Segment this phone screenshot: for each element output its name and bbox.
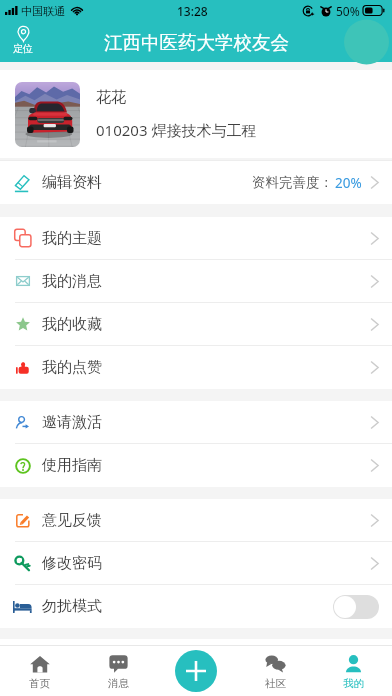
button[interactable]: 使用指南: [0, 444, 392, 487]
button[interactable]: 社区: [236, 647, 314, 696]
staticText: 使用指南: [42, 456, 102, 475]
staticText: 勿扰模式: [42, 597, 102, 616]
staticText: 我的主题: [42, 229, 102, 248]
button[interactable]: 意见反馈: [0, 499, 392, 541]
staticText: 意见反馈: [42, 511, 102, 530]
staticText: 20%: [335, 174, 362, 192]
button[interactable]: 发布: [175, 650, 217, 692]
staticText: 我的点赞: [42, 358, 102, 377]
staticText: 我的: [343, 677, 364, 690]
button[interactable]: 我的消息: [0, 260, 392, 302]
staticText: 我的消息: [42, 272, 102, 291]
staticText: 010203 焊接技术与工程: [96, 120, 257, 140]
button[interactable]: 我的收藏: [0, 303, 392, 345]
button[interactable]: 我的点赞: [0, 346, 392, 389]
staticText: 首页: [29, 677, 50, 690]
staticText: 社区: [265, 677, 286, 690]
button[interactable]: 编辑资料: [0, 161, 392, 204]
button[interactable]: 勿扰模式开关: [333, 595, 379, 619]
button[interactable]: 定位: [7, 24, 39, 56]
button[interactable]: 我的主题: [0, 217, 392, 259]
button[interactable]: 勿扰模式: [0, 585, 392, 628]
staticText: 邀请激活: [42, 413, 102, 432]
staticText: 花花: [96, 88, 126, 107]
button[interactable]: 我的: [314, 647, 392, 696]
button[interactable]: 邀请激活: [0, 401, 392, 443]
staticText: 修改密码: [42, 554, 102, 573]
button[interactable]: 修改密码: [0, 542, 392, 584]
staticText: 50%: [336, 3, 360, 19]
staticText: 资料完善度：: [252, 174, 333, 191]
staticText: 我的收藏: [42, 315, 102, 334]
staticText: 定位: [13, 42, 33, 55]
staticText: 中国联通: [21, 4, 65, 18]
button[interactable]: 消息: [79, 647, 158, 696]
staticText: 13:28: [177, 3, 208, 19]
staticText: 江西中医药大学校友会: [104, 31, 289, 54]
button[interactable]: 首页: [0, 647, 79, 696]
button[interactable]: 花花: [0, 70, 392, 158]
staticText: 消息: [108, 677, 129, 690]
staticText: 编辑资料: [42, 173, 102, 192]
